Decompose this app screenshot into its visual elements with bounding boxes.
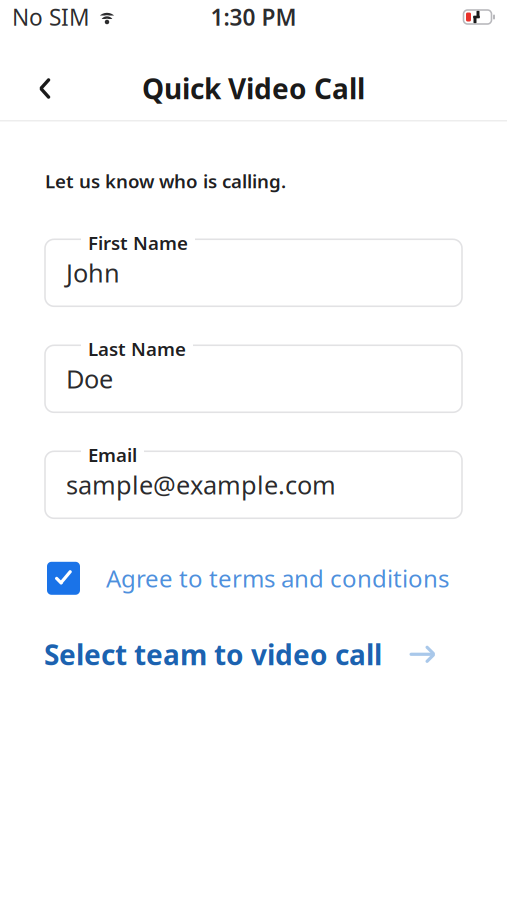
staticText: Last Name bbox=[88, 336, 186, 361]
button[interactable]: Back bbox=[18, 61, 72, 115]
button[interactable]: Select team to video call bbox=[0, 631, 507, 677]
staticText: No SIM bbox=[12, 2, 90, 32]
staticText: Quick Video Call bbox=[142, 70, 365, 107]
staticText: First Name bbox=[88, 230, 188, 255]
button[interactable]: John bbox=[45, 230, 462, 306]
staticText: Agree to terms and conditions bbox=[106, 562, 449, 594]
staticText: Doe bbox=[66, 362, 113, 396]
staticText: Email bbox=[88, 442, 137, 467]
staticText: 1:30 PM bbox=[210, 2, 296, 32]
staticText: Let us know who is calling. bbox=[45, 168, 286, 193]
staticText: sample@example.com bbox=[66, 468, 336, 502]
button[interactable]: sample@example.com bbox=[45, 442, 462, 518]
staticText: John bbox=[66, 256, 120, 290]
button[interactable]: Agree to terms and conditions bbox=[0, 556, 507, 600]
staticText: Select team to video call bbox=[44, 636, 382, 673]
button[interactable]: Doe bbox=[45, 336, 462, 412]
